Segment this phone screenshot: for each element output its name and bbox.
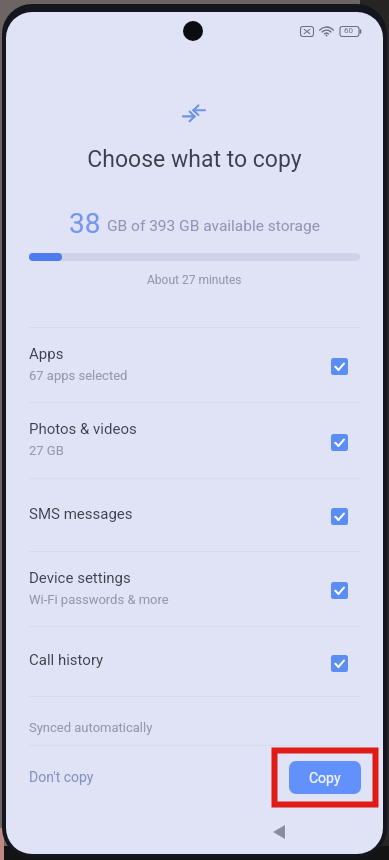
staticText: 60 <box>344 26 353 35</box>
staticText: Choose what to copy <box>87 146 302 173</box>
button[interactable]: Copy <box>289 761 361 794</box>
button[interactable]: Call history <box>6 626 383 696</box>
button[interactable]: Don't copy <box>23 763 100 791</box>
staticText: Call history <box>29 651 104 669</box>
staticText: Device settings <box>29 569 131 587</box>
button[interactable]: Photos & videos <box>6 402 383 478</box>
button[interactable]: Apps <box>6 327 383 402</box>
staticText: 38 <box>69 207 101 240</box>
staticText: Synced automatically <box>29 720 153 735</box>
button[interactable]: Toggle selection <box>331 358 348 375</box>
staticText: GB of 393 GB available storage <box>107 217 320 235</box>
staticText: Wi-Fi passwords & more <box>29 592 169 607</box>
staticText: Don't copy <box>29 769 94 785</box>
button[interactable]: Device settings <box>6 551 383 626</box>
staticText: Apps <box>29 345 64 363</box>
staticText: Copy <box>309 770 341 786</box>
staticText: 27 GB <box>29 443 64 458</box>
button[interactable]: Toggle selection <box>331 582 348 599</box>
button[interactable]: Toggle selection <box>331 434 348 451</box>
staticText: 67 apps selected <box>29 368 128 383</box>
staticText: SMS messages <box>29 505 133 523</box>
button[interactable]: Toggle selection <box>331 508 348 525</box>
button[interactable]: Back <box>272 824 286 840</box>
button[interactable]: Toggle selection <box>331 655 348 672</box>
button[interactable]: SMS messages <box>6 478 383 551</box>
staticText: Photos & videos <box>29 420 137 438</box>
staticText: About 27 minutes <box>147 273 242 287</box>
